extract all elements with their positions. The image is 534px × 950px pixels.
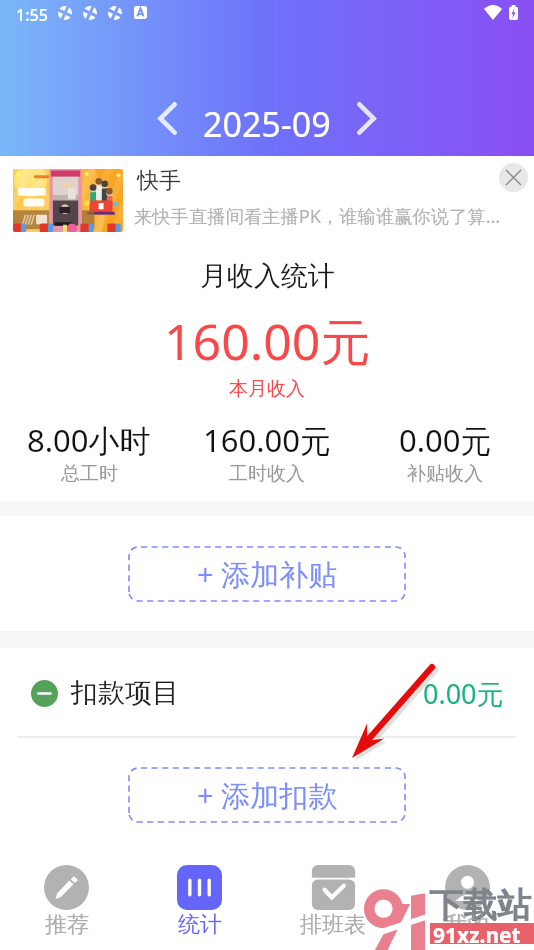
staticText: + 添加扣款 bbox=[197, 775, 338, 815]
staticText: 推荐 bbox=[45, 911, 89, 939]
staticText: 本月收入 bbox=[229, 377, 305, 401]
staticText: 1:55 bbox=[16, 4, 48, 26]
staticText: 月收入统计 bbox=[200, 259, 335, 293]
staticText: 统计 bbox=[178, 911, 222, 939]
staticText: 91xz.net bbox=[433, 921, 521, 950]
staticText: 总工时 bbox=[61, 462, 118, 486]
button[interactable]: 快手 bbox=[0, 156, 534, 236]
staticText: + 添加补贴 bbox=[197, 554, 338, 594]
staticText: 0.00元 bbox=[423, 675, 504, 712]
button[interactable]: 8.00小时 bbox=[0, 419, 178, 486]
staticText: 排班表 bbox=[300, 911, 366, 939]
button[interactable]: 我的 bbox=[400, 858, 534, 939]
staticText: 我的 bbox=[446, 911, 490, 939]
staticText: 160.00元 bbox=[203, 419, 331, 461]
staticText: 0.00元 bbox=[399, 419, 492, 461]
button[interactable]: 排班表 bbox=[266, 858, 400, 939]
button[interactable]: Close ad bbox=[499, 163, 528, 192]
staticText: 2025-09 bbox=[203, 101, 331, 147]
staticText: 160.00元 bbox=[164, 307, 371, 375]
staticText: 补贴收入 bbox=[407, 462, 483, 486]
button[interactable]: 推荐 bbox=[0, 858, 133, 939]
button[interactable]: Next month bbox=[344, 96, 389, 141]
staticText: 我的 bbox=[445, 911, 489, 939]
button[interactable]: + 添加扣款 bbox=[129, 768, 405, 822]
button[interactable]: 160.00元 bbox=[178, 419, 356, 486]
staticText: 快手 bbox=[137, 167, 181, 195]
button[interactable]: 扣款项目 bbox=[0, 663, 534, 723]
staticText: 工时收入 bbox=[229, 462, 305, 486]
staticText: 来快手直播间看主播PK，谁输谁赢你说了算… bbox=[134, 203, 501, 228]
button[interactable]: 0.00元 bbox=[356, 419, 534, 486]
staticText: 扣款项目 bbox=[71, 676, 179, 710]
staticText: 下载站 bbox=[429, 884, 531, 927]
button[interactable]: 统计 bbox=[133, 858, 266, 939]
staticText: 8.00小时 bbox=[27, 419, 151, 461]
button[interactable]: + 添加补贴 bbox=[129, 547, 405, 601]
button[interactable]: Previous month bbox=[145, 96, 190, 141]
